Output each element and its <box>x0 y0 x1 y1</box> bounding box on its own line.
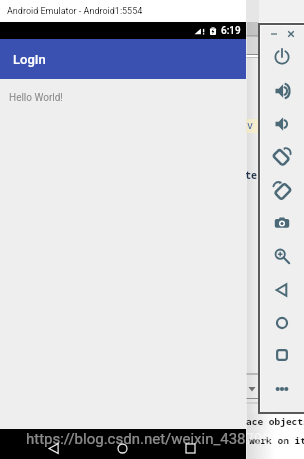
staticText: Android Emulator - Android1:5554 <box>7 6 143 17</box>
button[interactable]: Back <box>48 443 59 454</box>
staticText: Hello World! <box>9 92 63 104</box>
button[interactable]: More <box>273 380 291 398</box>
button[interactable]: Close <box>283 26 299 42</box>
button[interactable]: Home <box>273 314 291 332</box>
button[interactable]: Zoom <box>273 247 291 265</box>
button[interactable]: Minimise <box>266 26 282 42</box>
staticText: https://blog.csdn.net/weixin_438798411 <box>26 430 297 448</box>
button[interactable]: Back <box>273 281 291 299</box>
staticText: te <box>245 168 257 182</box>
staticText: v <box>247 118 253 132</box>
button[interactable]: Screenshot <box>273 214 291 232</box>
button[interactable]: Recents <box>185 443 196 454</box>
staticText: LogIn <box>13 52 46 67</box>
button[interactable]: Rotate right <box>273 181 291 199</box>
button[interactable]: Volume up <box>273 82 291 100</box>
staticText: 6:19 <box>221 25 241 37</box>
button[interactable]: Home <box>117 443 128 454</box>
button[interactable]: Power <box>273 48 291 66</box>
staticText: work on its <box>249 434 304 447</box>
button[interactable]: Volume down <box>273 115 291 133</box>
staticText: ace objects, <box>246 415 304 428</box>
button[interactable]: Overview <box>273 346 291 364</box>
button[interactable]: Rotate left <box>273 147 291 165</box>
